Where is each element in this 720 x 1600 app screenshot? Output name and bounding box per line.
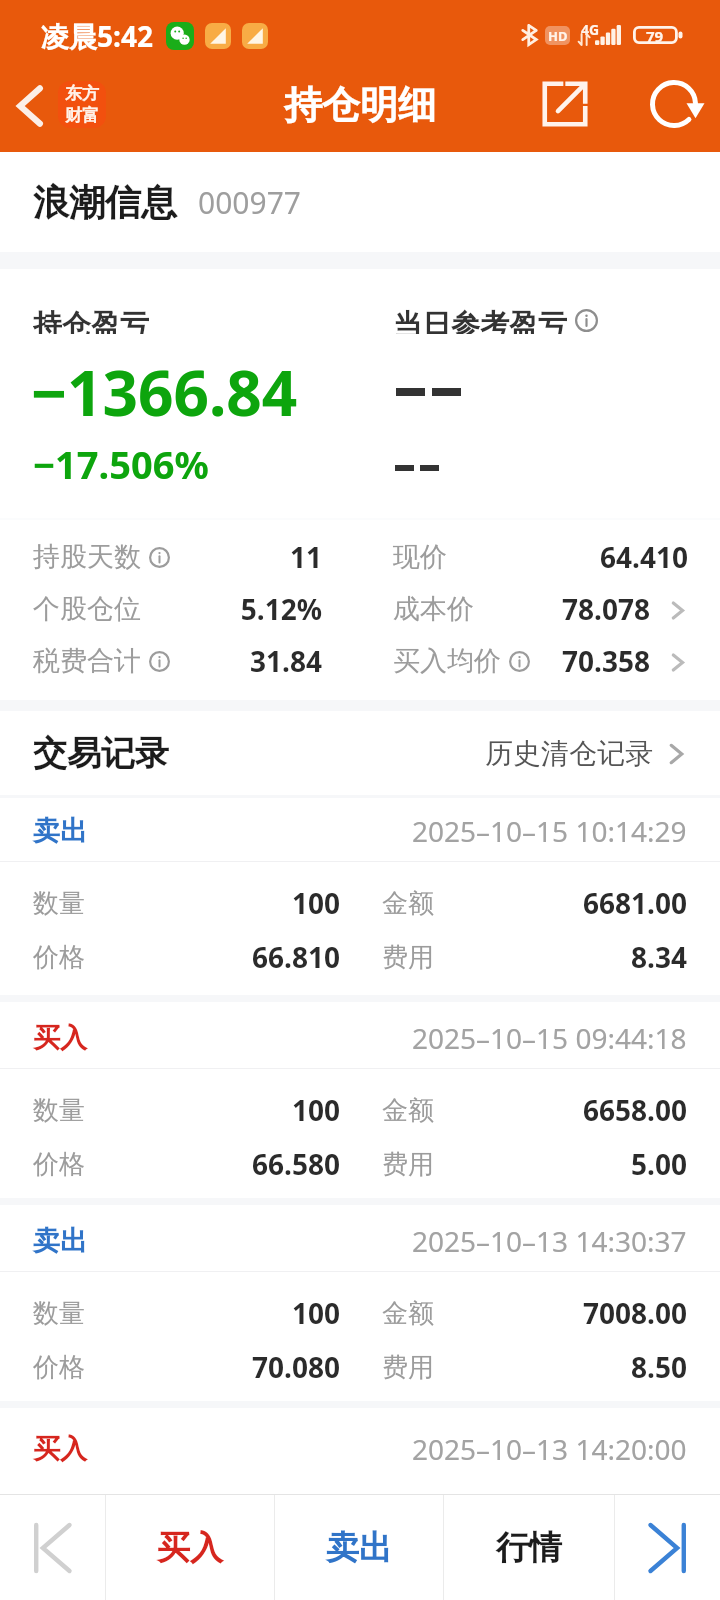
staticText: 64.410 (500, 538, 688, 576)
staticText: 东方 (65, 83, 99, 104)
staticText: 价格 (33, 1148, 85, 1181)
button[interactable]: 行情 (444, 1495, 614, 1600)
button[interactable]: 买入 (0, 1012, 720, 1064)
staticText: 79 (646, 26, 664, 46)
staticText: 价格 (33, 1351, 85, 1384)
staticText: 100 (160, 884, 340, 922)
staticText: 凌晨5:42 (41, 17, 153, 55)
staticText: 4G (581, 20, 600, 39)
staticText: 持股天数 (33, 540, 141, 574)
staticText: 000977 (198, 182, 301, 223)
staticText: 11 (160, 538, 322, 576)
staticText: 66.580 (160, 1145, 340, 1183)
staticText: 5.12% (160, 590, 322, 628)
staticText: 持仓明细 (284, 81, 436, 129)
button[interactable]: Back (0, 72, 112, 152)
staticText: 数量 (33, 887, 85, 920)
staticText: 7008.00 (583, 1294, 687, 1332)
staticText: 31.84 (160, 642, 322, 680)
button[interactable]: 买入 (0, 1423, 720, 1475)
button[interactable]: 历史清仓记录 (485, 736, 720, 771)
staticText: 费用 (382, 941, 434, 974)
staticText: 金额 (382, 1094, 434, 1127)
staticText: 2025–10–15 09:44:18 (412, 1019, 687, 1057)
button[interactable]: 买入 (106, 1495, 274, 1600)
staticText: 70.080 (160, 1348, 340, 1386)
staticText: 6681.00 (583, 884, 687, 922)
staticText: 买入 (33, 1432, 87, 1466)
staticText: 卖出 (33, 1224, 87, 1258)
staticText: HD (548, 27, 568, 45)
staticText: 个股仓位 (33, 592, 141, 626)
staticText: 6658.00 (583, 1091, 687, 1129)
staticText: 70.358 (500, 642, 650, 680)
staticText: 8.50 (631, 1348, 687, 1386)
staticText: 浪潮信息 (33, 180, 177, 225)
staticText: 8.34 (631, 938, 687, 976)
staticText: 卖出 (326, 1527, 392, 1569)
staticText: 财富 (65, 105, 99, 126)
staticText: 金额 (382, 887, 434, 920)
staticText: 价格 (33, 941, 85, 974)
staticText: 2025–10–13 14:20:00 (412, 1430, 687, 1468)
button[interactable]: 卖出 (0, 805, 720, 857)
staticText: 成本价 (393, 592, 474, 626)
button[interactable]: Last page (615, 1495, 720, 1600)
staticText: 2025–10–15 10:14:29 (412, 812, 687, 850)
staticText: 税费合计 (33, 644, 141, 678)
staticText: 数量 (33, 1094, 85, 1127)
button[interactable]: 卖出 (275, 1495, 443, 1600)
button[interactable]: Refresh (628, 72, 720, 152)
staticText: 数量 (33, 1297, 85, 1330)
staticText: 当日参考盈亏 (393, 307, 567, 334)
staticText: 66.810 (160, 938, 340, 976)
button[interactable]: 卖出 (0, 1215, 720, 1267)
staticText: 交易记录 (33, 732, 169, 775)
button[interactable]: Share (521, 72, 609, 152)
staticText: 行情 (496, 1527, 562, 1569)
staticText: 金额 (382, 1297, 434, 1330)
staticText: 买入 (33, 1021, 87, 1055)
staticText: 2025–10–13 14:30:37 (412, 1222, 687, 1260)
staticText: 78.078 (500, 590, 650, 628)
staticText: 历史清仓记录 (485, 736, 653, 771)
staticText: 买入均价 (393, 644, 501, 678)
staticText: 5.00 (631, 1145, 687, 1183)
staticText: −17.506% (33, 438, 209, 490)
staticText: 持仓盈亏 (33, 307, 149, 334)
staticText: −1366.84 (31, 350, 298, 434)
button[interactable]: First page (0, 1495, 105, 1600)
staticText: 卖出 (33, 814, 87, 848)
staticText: 买入 (157, 1527, 223, 1569)
staticText: 费用 (382, 1148, 434, 1181)
staticText: 100 (160, 1091, 340, 1129)
staticText: 100 (160, 1294, 340, 1332)
staticText: 现价 (393, 540, 447, 574)
staticText: 费用 (382, 1351, 434, 1384)
